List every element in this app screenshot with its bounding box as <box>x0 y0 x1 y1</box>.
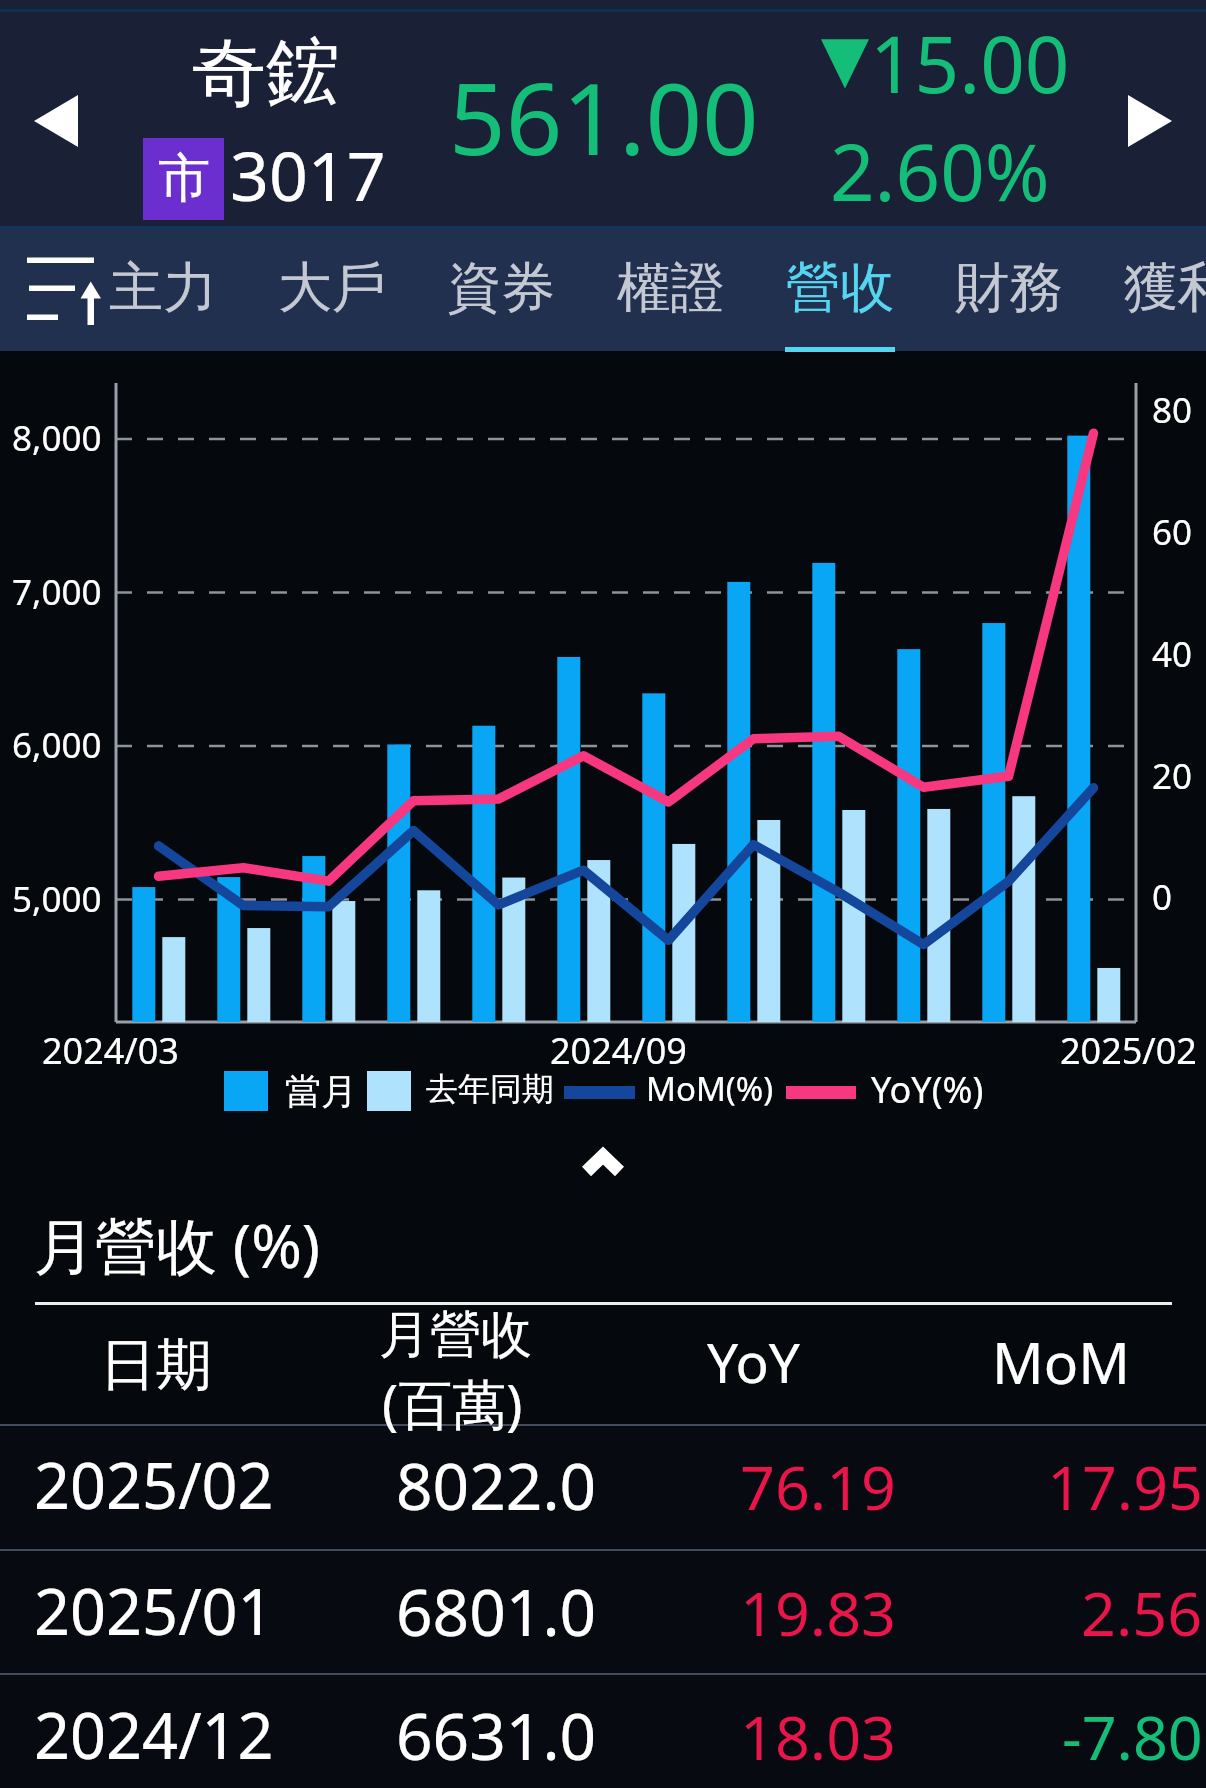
staticText: 6801.0 <box>396 1568 597 1655</box>
staticText: 2.60% <box>830 118 1050 224</box>
button[interactable]: 權證 <box>587 226 755 351</box>
staticText: 6,000 <box>12 721 102 769</box>
staticText: 2025/01 <box>34 1568 274 1654</box>
staticText: 獲利 <box>1124 254 1206 322</box>
staticText: 561.00 <box>449 49 759 184</box>
staticText: 76.19 <box>740 1445 896 1528</box>
staticText: YoY(%) <box>871 1065 984 1114</box>
staticText: 17.95 <box>1047 1445 1203 1528</box>
staticText: 60 <box>1152 508 1193 556</box>
button[interactable] <box>0 1425 1206 1548</box>
staticText: 6631.0 <box>396 1692 597 1779</box>
staticText: 8022.0 <box>396 1442 597 1529</box>
button[interactable]: 獲利 <box>1094 226 1206 351</box>
button[interactable]: Previous stock <box>10 75 102 167</box>
staticText: 月營收 (%) <box>34 1203 321 1286</box>
staticText: YoY <box>707 1324 800 1399</box>
staticText: 40 <box>1152 630 1193 678</box>
staticText: 奇鋐 <box>192 27 340 120</box>
staticText: 5,000 <box>12 875 102 923</box>
button[interactable] <box>0 1674 1206 1788</box>
staticText: 19.83 <box>740 1571 896 1654</box>
staticText: 20 <box>1152 752 1193 800</box>
staticText: 2025/02 <box>1060 1026 1197 1075</box>
staticText: 資券 <box>447 254 555 322</box>
staticText: 2024/12 <box>34 1692 274 1778</box>
button[interactable]: 大戶 <box>248 226 416 351</box>
staticText: 2.56 <box>1081 1571 1203 1654</box>
button[interactable]: Sort <box>14 246 110 334</box>
button[interactable]: 資券 <box>417 226 585 351</box>
staticText: 營收 <box>786 254 894 322</box>
staticText: 當月 <box>285 1069 357 1114</box>
staticText: 日期 <box>100 1330 212 1401</box>
button[interactable]: Next stock <box>1104 75 1196 167</box>
staticText: 15.00 <box>870 10 1070 116</box>
button[interactable]: 財務 <box>925 226 1093 351</box>
staticText: 3017 <box>230 128 386 221</box>
staticText: 80 <box>1152 386 1193 434</box>
staticText: 市 <box>158 146 210 212</box>
staticText: 8,000 <box>12 414 102 462</box>
button[interactable]: 主力 <box>79 226 247 351</box>
staticText: 0 <box>1152 873 1173 921</box>
staticText: 去年同期 <box>426 1069 554 1109</box>
staticText: MoM <box>992 1323 1130 1401</box>
staticText: 2025/02 <box>34 1442 274 1528</box>
staticText: (百萬) <box>382 1366 523 1440</box>
staticText: 大戶 <box>278 254 386 322</box>
staticText: 2024/09 <box>550 1026 687 1075</box>
staticText: 月營收 <box>379 1303 532 1367</box>
button[interactable]: 營收 <box>756 226 924 351</box>
staticText: 18.03 <box>740 1695 896 1778</box>
staticText: 財務 <box>955 254 1063 322</box>
staticText: -7.80 <box>1062 1695 1203 1778</box>
button[interactable] <box>0 1550 1206 1673</box>
staticText: 7,000 <box>12 568 102 616</box>
staticText: 權證 <box>617 254 725 322</box>
staticText: 2024/03 <box>42 1026 179 1075</box>
staticText: 主力 <box>109 254 217 322</box>
button[interactable]: Collapse chart <box>543 1122 663 1204</box>
staticText: MoM(%) <box>646 1066 774 1111</box>
